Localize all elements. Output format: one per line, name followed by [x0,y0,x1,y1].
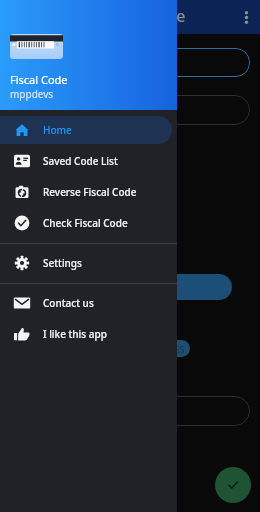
button[interactable]: Contact us [0,289,172,317]
staticText: Contact us [43,296,94,310]
staticText: Home [43,123,72,137]
staticText: mppdevs [10,87,54,101]
button[interactable]: Reverse Fiscal Code [0,178,172,206]
button[interactable]: Check Fiscal Code [0,209,172,237]
staticText: Settings [43,256,82,270]
button[interactable]: I like this app [0,320,172,348]
button[interactable]: Home [0,116,172,144]
staticText: Check Fiscal Code [43,216,128,230]
staticText: Fiscal Code [10,72,68,87]
staticText: I like this app [43,327,107,341]
button[interactable]: Nome [11,48,250,77]
button[interactable]: COMUNES [134,340,190,357]
button[interactable]: Settings [0,249,172,277]
staticText: COMUNES [140,343,185,355]
staticText: SELEZIONA COMUNE [62,280,162,294]
button[interactable]: Data di nascita [11,396,250,426]
staticText: Reverse Fiscal Code [43,185,137,199]
staticText: Codice Fiscale [79,5,186,27]
button[interactable]: Saved Code List [0,147,172,175]
staticText: Saved Code List [43,154,118,168]
button[interactable]: More options [232,0,260,34]
button[interactable]: Cognome [11,95,250,125]
staticText: Sesso: Maschio Femminale [28,186,178,201]
staticText: Nome [27,55,59,70]
staticText: Cognome [27,103,78,118]
button[interactable]: SELEZIONA COMUNE [28,274,232,300]
button[interactable]: Calculate fiscal code [215,467,251,503]
